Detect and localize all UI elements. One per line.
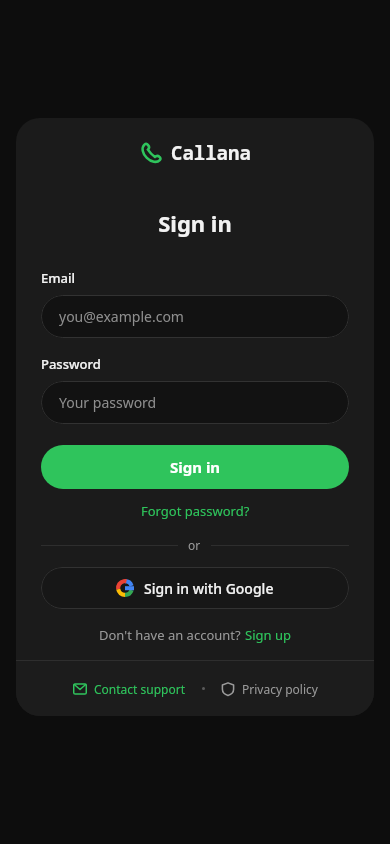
button[interactable]: Contact support <box>69 677 190 701</box>
button[interactable]: Sign in <box>41 445 349 489</box>
staticText: Callana <box>171 140 251 166</box>
staticText: Your password <box>59 393 157 412</box>
staticText: you@example.com <box>59 307 184 326</box>
staticText: Password <box>41 355 101 373</box>
staticText: Contact support <box>94 681 186 697</box>
staticText: Email <box>41 269 76 287</box>
staticText: Sign up <box>245 626 291 644</box>
other: Callana logo <box>140 142 162 164</box>
button[interactable]: you@example.com <box>41 295 349 338</box>
staticText: Sign in <box>170 457 221 477</box>
button[interactable]: Forgot password? <box>135 499 256 523</box>
button[interactable]: Sign up <box>245 626 291 644</box>
staticText: Sign in <box>41 208 349 238</box>
button[interactable]: Privacy policy <box>217 677 322 701</box>
button[interactable]: Sign in with Google <box>41 567 349 609</box>
staticText: Don't have an account? <box>99 626 245 644</box>
staticText: Forgot password? <box>141 502 250 520</box>
staticText: Sign in with Google <box>144 579 274 598</box>
staticText: or <box>188 537 201 553</box>
staticText: Privacy policy <box>242 681 318 697</box>
button[interactable]: Your password <box>41 381 349 424</box>
